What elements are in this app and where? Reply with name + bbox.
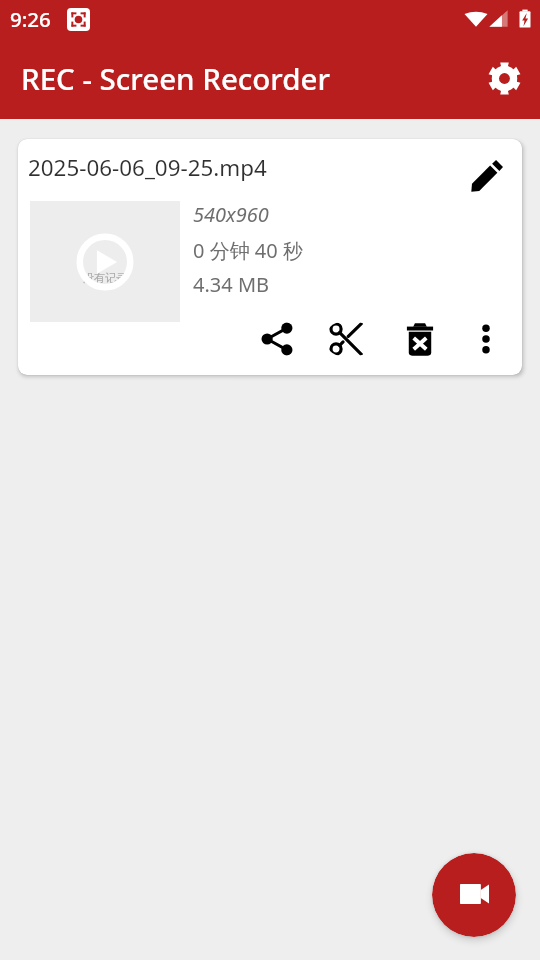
- button[interactable]: Start recording: [432, 853, 516, 937]
- button[interactable]: More options: [462, 322, 510, 356]
- button[interactable]: Rename: [464, 154, 508, 198]
- staticText: REC - Screen Recorder: [21, 58, 330, 98]
- button[interactable]: 2025-06-06_09-25.mp4: [18, 139, 522, 375]
- staticText: 9:26: [10, 5, 51, 33]
- button[interactable]: Trim: [325, 322, 373, 356]
- staticText: 4.34 MB: [193, 271, 270, 298]
- staticText: 2025-06-06_09-25.mp4: [28, 152, 267, 183]
- staticText: 没有记录: [83, 271, 127, 285]
- button[interactable]: Share: [253, 322, 301, 356]
- staticText: 540x960: [193, 201, 269, 228]
- staticText: 0 分钟 40 秒: [193, 237, 303, 264]
- button[interactable]: Settings: [480, 54, 528, 102]
- button[interactable]: Delete: [396, 322, 444, 356]
